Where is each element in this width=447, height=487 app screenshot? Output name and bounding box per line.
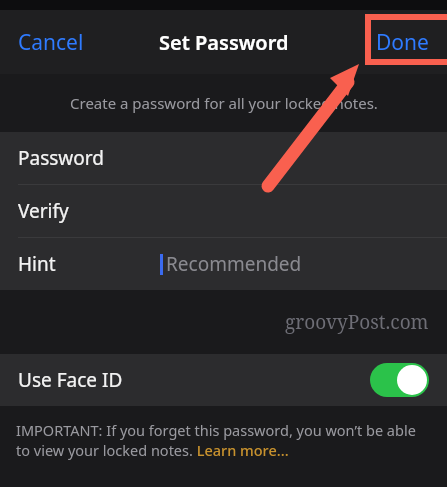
- staticText: IMPORTANT: If you forget this password, …: [16, 420, 427, 460]
- button[interactable]: Cancel: [8, 20, 94, 65]
- button[interactable]: Use Face ID toggle, on: [370, 363, 429, 397]
- button[interactable]: Verify: [0, 185, 447, 237]
- button[interactable]: Use Face ID: [0, 354, 447, 406]
- staticText: Set Password: [159, 29, 289, 56]
- staticText: Password: [18, 145, 104, 171]
- button[interactable]: Password: [0, 132, 447, 184]
- staticText: Recommended: [166, 251, 302, 277]
- button[interactable]: Hint: [0, 238, 447, 290]
- staticText: groovyPost.com: [285, 309, 429, 335]
- staticText: Cancel: [18, 28, 84, 57]
- staticText: Verify: [18, 198, 69, 224]
- staticText: Create a password for all your locked no…: [70, 93, 378, 113]
- button[interactable]: Done: [364, 20, 441, 65]
- staticText: Hint: [18, 251, 56, 277]
- staticText: Done: [376, 28, 429, 57]
- staticText: Use Face ID: [18, 367, 123, 393]
